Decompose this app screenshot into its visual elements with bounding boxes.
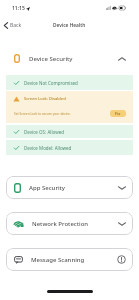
staticText: Device Health [53, 22, 86, 29]
staticText: Device Not Compromised [24, 80, 78, 86]
other: Collapse section [118, 57, 126, 61]
button[interactable]: Device Security [6, 42, 133, 75]
staticText: App Security [29, 184, 66, 192]
staticText: Message Scanning [31, 256, 85, 264]
staticText: Back [10, 22, 22, 29]
staticText: Device OS: Allowed [24, 129, 65, 135]
staticText: 11:15 [12, 5, 25, 12]
staticText: Network Protection [32, 220, 89, 228]
button[interactable]: Message Scanning [6, 248, 133, 271]
button[interactable]: Back [0, 19, 28, 32]
other: Expand section [118, 186, 126, 190]
staticText: Screen Lock: Disabled [24, 96, 66, 102]
staticText: Fix [115, 111, 121, 116]
button[interactable]: App Security [6, 176, 133, 199]
button[interactable]: Fix [110, 110, 126, 117]
staticText: Device Security [29, 55, 73, 63]
staticText: Set Screen Lock to secure your device. [14, 112, 71, 116]
staticText: Device Model: Allowed [24, 145, 72, 151]
other: Expand section [118, 222, 126, 226]
other: More information [117, 255, 126, 264]
button[interactable]: Network Protection [6, 212, 133, 235]
